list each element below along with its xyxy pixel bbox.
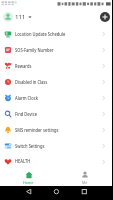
button[interactable]: HEALTH (0, 154, 113, 169)
staticText: SMS reminder settings (15, 127, 59, 134)
button[interactable]: SOS-Family Number (0, 42, 113, 58)
button[interactable]: Switch Settings (0, 138, 113, 154)
button[interactable]: Profile (3, 12, 13, 22)
staticText: Rewards (15, 63, 32, 70)
button[interactable]: Rewards (0, 58, 113, 74)
button[interactable]: Location Update Schedule (0, 26, 113, 42)
button[interactable]: Find Device (0, 106, 113, 122)
staticText: SOS-Family Number (15, 47, 54, 54)
staticText: Find Device (15, 111, 38, 118)
button[interactable]: SMS reminder settings (0, 122, 113, 138)
staticText: HEALTH (15, 158, 31, 165)
staticText: Switch Settings (15, 143, 44, 150)
button[interactable]: Add device (100, 12, 110, 22)
staticText: Me (82, 180, 88, 185)
button[interactable]: Disabled in Class (0, 74, 113, 90)
button[interactable]: Alarm Clock (0, 90, 113, 106)
staticText: Home (23, 180, 34, 185)
button[interactable]: Me (56, 169, 113, 186)
staticText: Disabled in Class (15, 79, 48, 86)
staticText: Alarm Clock (15, 95, 38, 102)
button[interactable]: Home (0, 169, 56, 186)
button[interactable]: 111 (15, 13, 32, 21)
staticText: 111 (15, 13, 26, 21)
staticText: Location Update Schedule (15, 31, 65, 38)
